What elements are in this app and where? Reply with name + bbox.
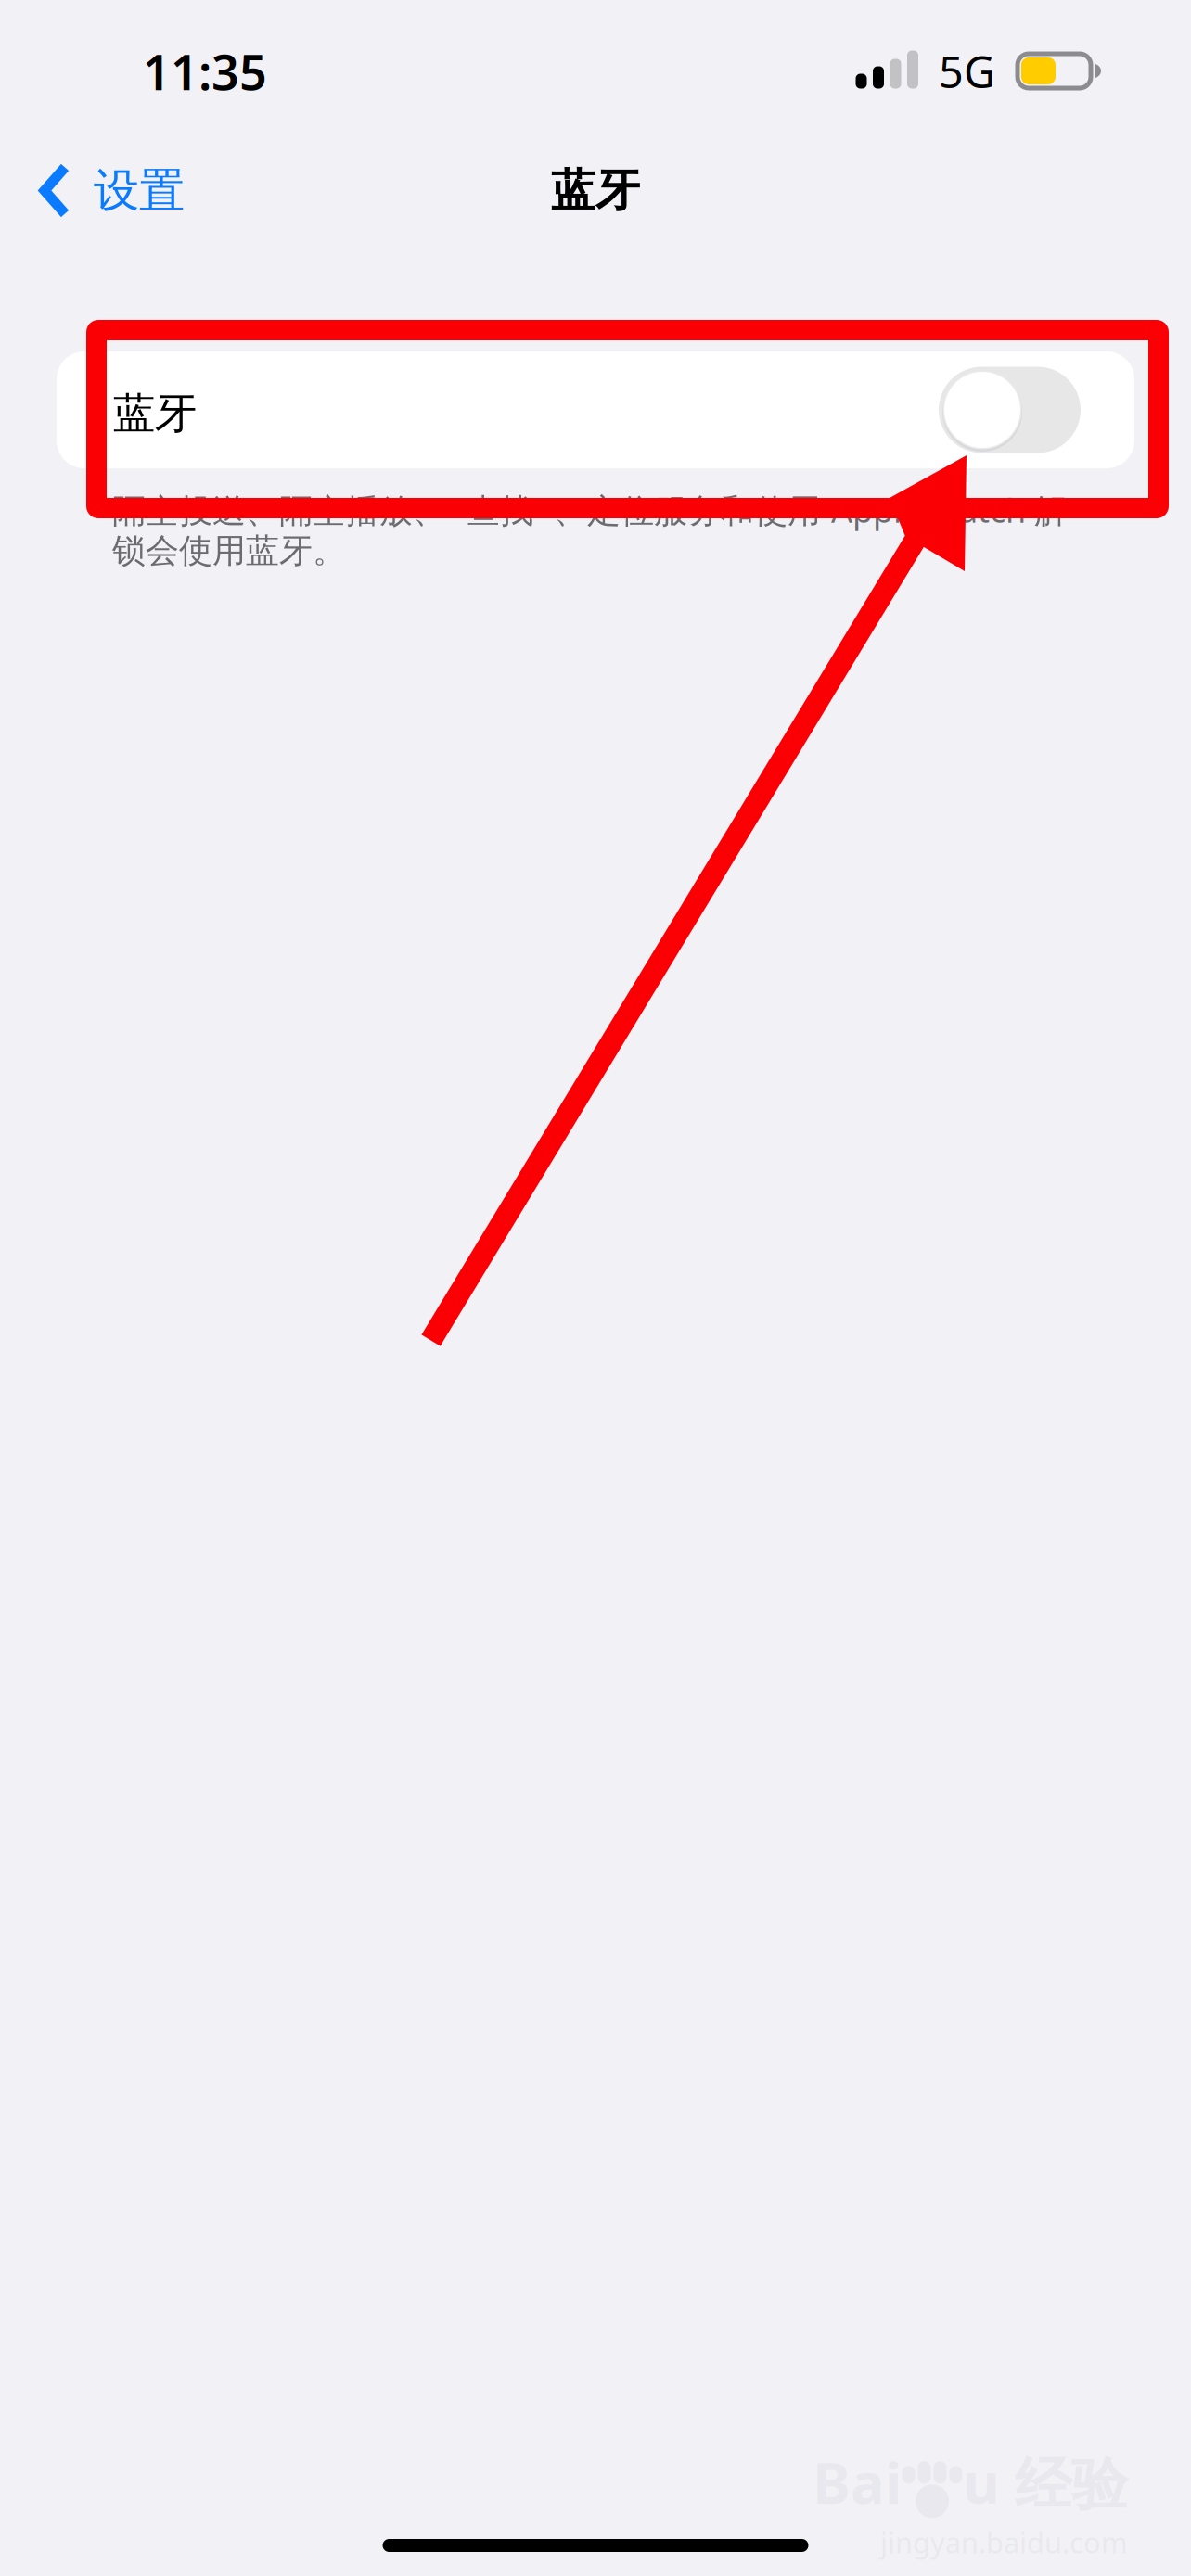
staticText: 蓝牙 (113, 388, 197, 439)
button[interactable]: 设置 (0, 143, 209, 238)
button[interactable]: 蓝牙 (57, 351, 1134, 468)
staticText: 5G (939, 43, 995, 100)
staticText: 蓝牙 (551, 163, 640, 218)
staticText: 锁会使用蓝牙。 (112, 530, 346, 571)
staticText: 11:35 (143, 39, 267, 103)
staticText: Bai (813, 2444, 902, 2520)
staticText: 设置 (94, 162, 185, 219)
button[interactable]: 关闭 (939, 367, 1081, 453)
staticText: 隔空投送、隔空播放、 “查找” 、定位服务和使用 Apple Watch 解 (112, 488, 1068, 532)
staticText: u 经验 (963, 2444, 1128, 2520)
